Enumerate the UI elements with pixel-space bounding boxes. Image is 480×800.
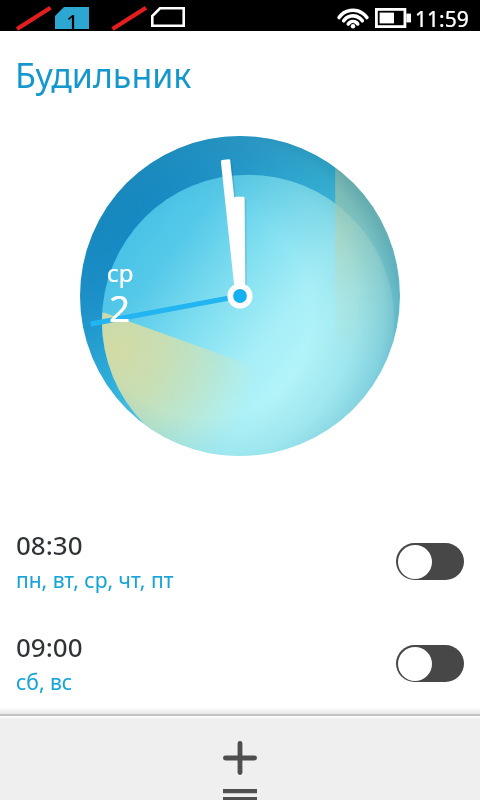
staticText: Будильник bbox=[15, 52, 192, 98]
staticText: 09:00 bbox=[16, 629, 83, 664]
button[interactable]: 09:00 bbox=[0, 624, 480, 702]
button[interactable]: 08:30 bbox=[0, 522, 480, 600]
staticText: 08:30 bbox=[16, 527, 83, 562]
staticText: пн, вт, ср, чт, пт bbox=[16, 566, 174, 595]
button[interactable]: Toggle alarm bbox=[396, 645, 464, 682]
staticText: ср bbox=[107, 256, 134, 289]
staticText: 11:59 bbox=[415, 5, 469, 34]
staticText: 1 bbox=[66, 7, 79, 29]
staticText: 2 bbox=[109, 282, 131, 332]
button[interactable]: Toggle alarm bbox=[396, 543, 464, 580]
button[interactable]: Add alarm bbox=[211, 729, 269, 787]
staticText: сб, вс bbox=[16, 668, 73, 697]
